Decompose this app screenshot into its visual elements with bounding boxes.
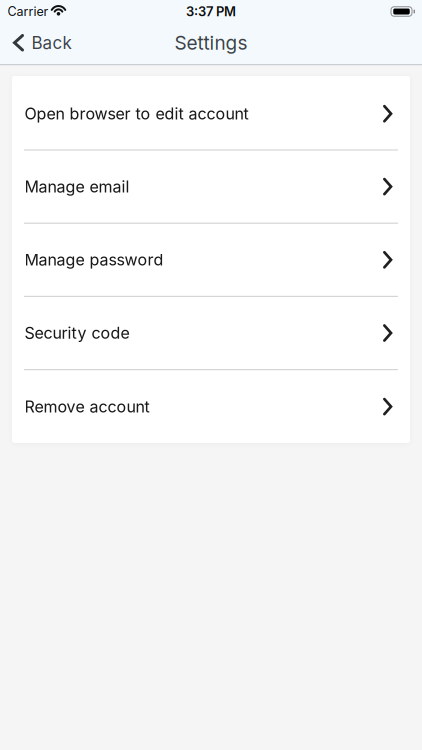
staticText: Manage email — [24, 177, 129, 196]
staticText: 3:37 PM — [186, 4, 236, 19]
staticText: Back — [31, 32, 71, 53]
staticText: Open browser to edit account — [24, 104, 248, 123]
staticText: Carrier — [7, 4, 48, 19]
button[interactable]: Back — [14, 32, 71, 53]
button[interactable]: Manage password — [12, 224, 410, 296]
staticText: Remove account — [24, 397, 149, 416]
staticText: Manage password — [24, 250, 163, 269]
button[interactable]: Security code — [12, 297, 410, 369]
staticText: Security code — [24, 323, 129, 343]
button[interactable]: Manage email — [12, 151, 410, 223]
button[interactable]: Remove account — [12, 370, 410, 443]
staticText: Settings — [174, 31, 247, 54]
button[interactable]: Open browser to edit account — [12, 76, 410, 149]
